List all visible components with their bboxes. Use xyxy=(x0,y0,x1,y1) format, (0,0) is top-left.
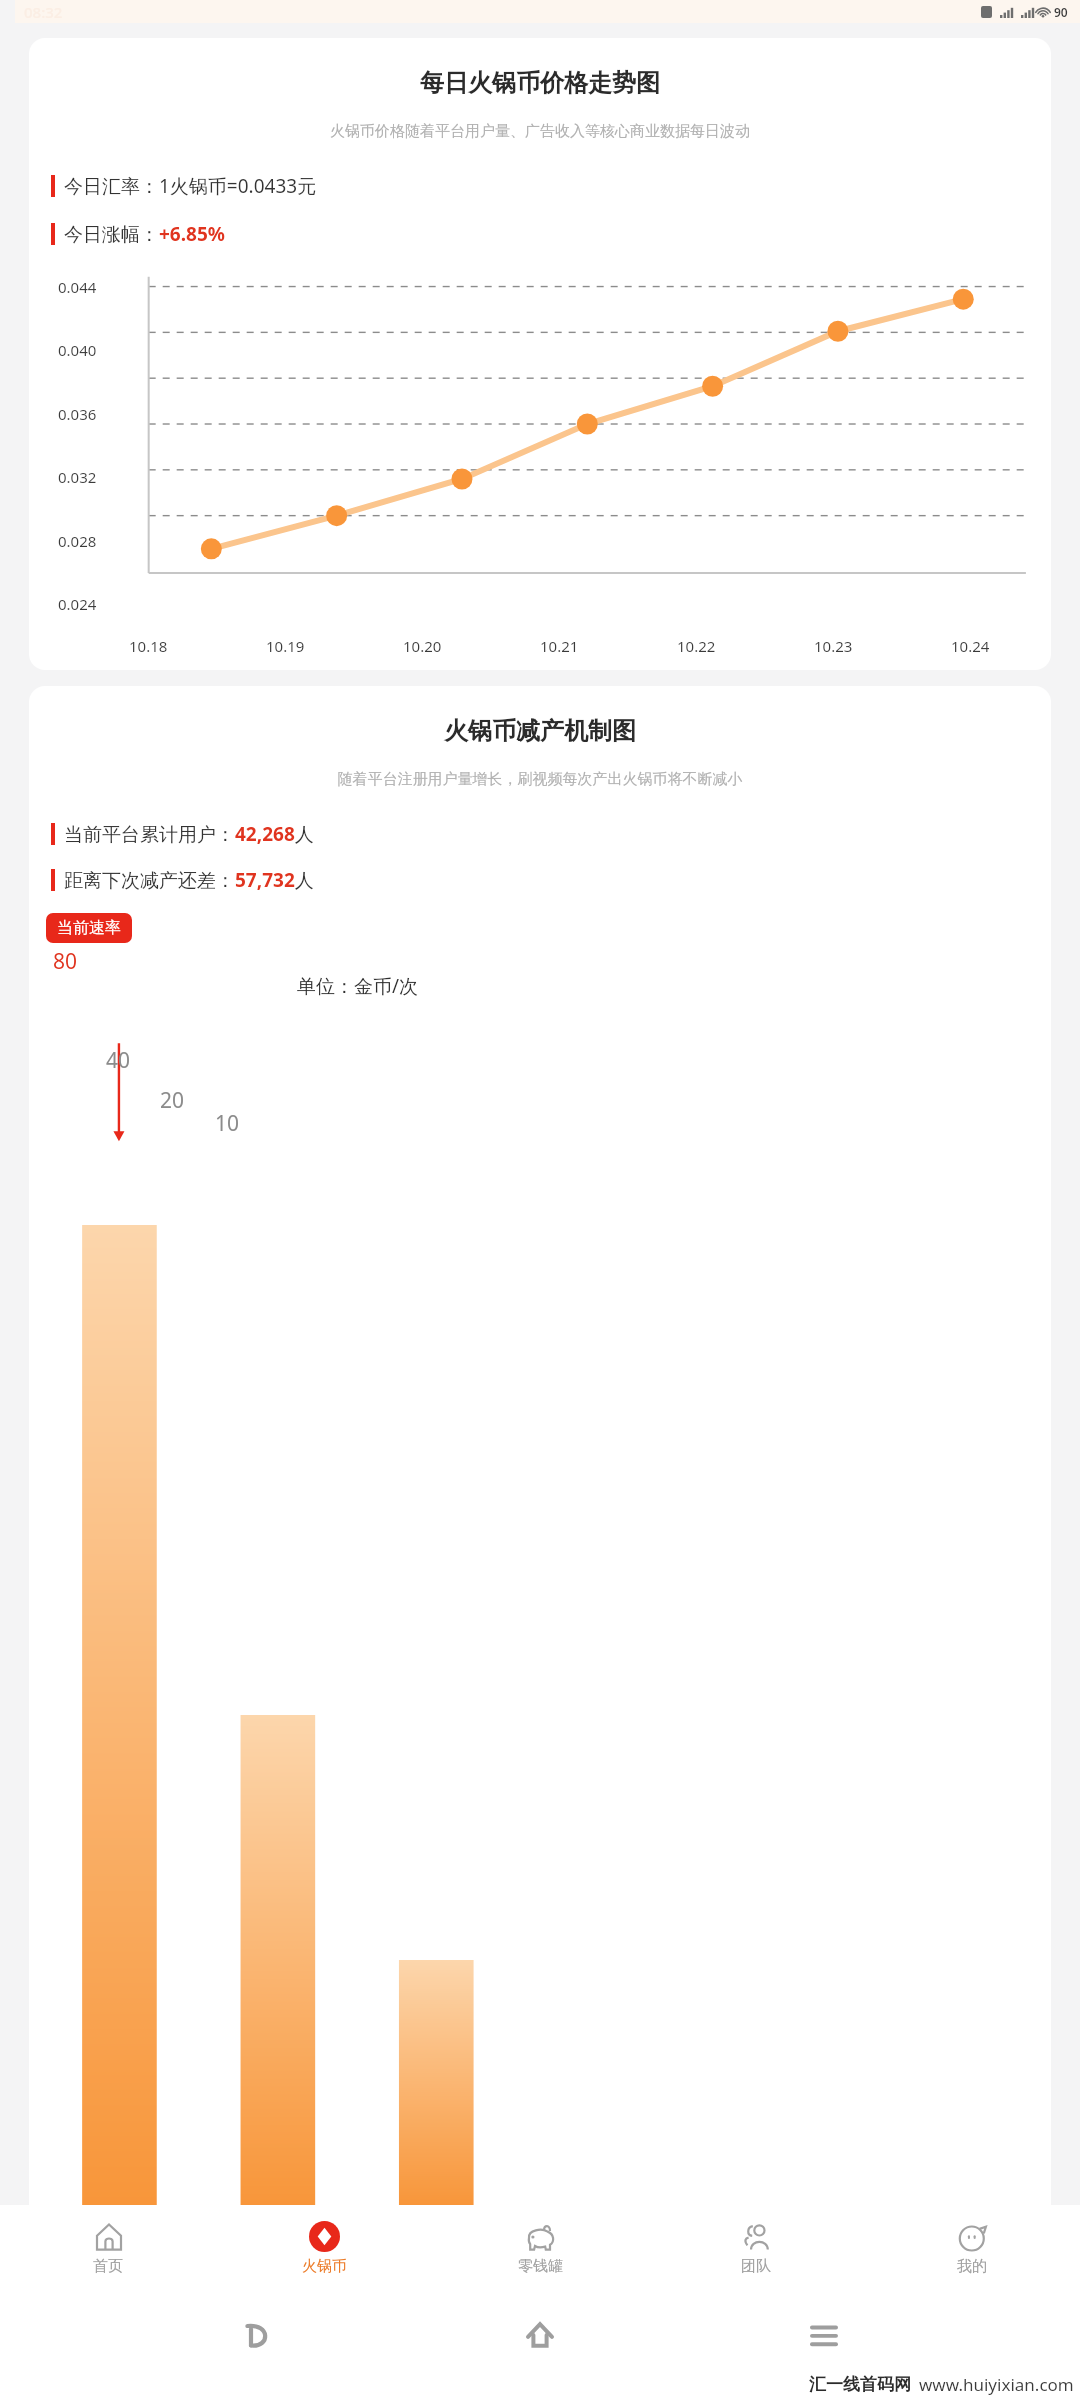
button[interactable]: 团队 xyxy=(648,2205,864,2290)
staticText: 今日涨幅：+6.85% xyxy=(64,221,225,247)
staticText: 火锅币价格随着平台用户量、广告收入等核心商业数据每日波动 xyxy=(33,122,1047,141)
staticText: 团队 xyxy=(741,2257,771,2276)
staticText: 火锅币 xyxy=(302,2257,347,2276)
button[interactable]: 火锅币 xyxy=(216,2205,432,2290)
button[interactable]: 首页 xyxy=(0,2205,216,2290)
button[interactable]: 当前速率 xyxy=(57,918,121,938)
button[interactable]: 零钱罐 xyxy=(432,2205,648,2290)
staticText: 每日火锅币价格走势图 xyxy=(29,68,1051,98)
button[interactable]: Recent apps xyxy=(797,2308,851,2362)
staticText: 10.21 xyxy=(540,636,579,656)
staticText: 单位：金币/次 xyxy=(297,973,419,999)
button[interactable]: 我的 xyxy=(864,2205,1080,2290)
button[interactable]: Back xyxy=(230,2308,284,2362)
staticText: 80 xyxy=(53,947,78,976)
staticText: 火锅币减产机制图 xyxy=(29,716,1051,746)
staticText: 当前速率 xyxy=(57,918,121,938)
staticText: 20 xyxy=(160,1086,185,1115)
staticText: 汇一线首码网 xyxy=(809,2374,911,2395)
staticText: 0.024 xyxy=(58,594,97,614)
staticText: 首页 xyxy=(93,2257,123,2276)
staticText: 10.22 xyxy=(677,636,716,656)
staticText: 零钱罐 xyxy=(518,2257,563,2276)
staticText: 10.18 xyxy=(129,636,168,656)
button[interactable]: Home xyxy=(513,2308,567,2362)
staticText: 距离下次减产还差：57,732人 xyxy=(64,867,314,893)
staticText: 10 xyxy=(215,1109,240,1138)
staticText: 08:32 xyxy=(24,2,63,22)
staticText: 10.24 xyxy=(951,636,990,656)
staticText: 0.044 xyxy=(58,277,97,297)
staticText: 当前平台累计用户：42,268人 xyxy=(64,821,314,847)
staticText: www.huiyixian.com xyxy=(919,2373,1074,2396)
staticText: 0.036 xyxy=(58,404,97,424)
staticText: 随着平台注册用户量增长，刷视频每次产出火锅币将不断减小 xyxy=(31,770,1049,789)
staticText: 10.23 xyxy=(814,636,853,656)
staticText: 今日汇率：1火锅币=0.0433元 xyxy=(64,173,317,199)
staticText: 0.028 xyxy=(58,531,97,551)
staticText: 0.040 xyxy=(58,340,97,360)
staticText: 0.032 xyxy=(58,467,97,487)
staticText: 10.20 xyxy=(403,636,442,656)
staticText: 我的 xyxy=(957,2257,987,2276)
staticText: 90 xyxy=(1054,4,1068,20)
staticText: 10.19 xyxy=(266,636,305,656)
staticText: 40 xyxy=(106,1046,131,1075)
